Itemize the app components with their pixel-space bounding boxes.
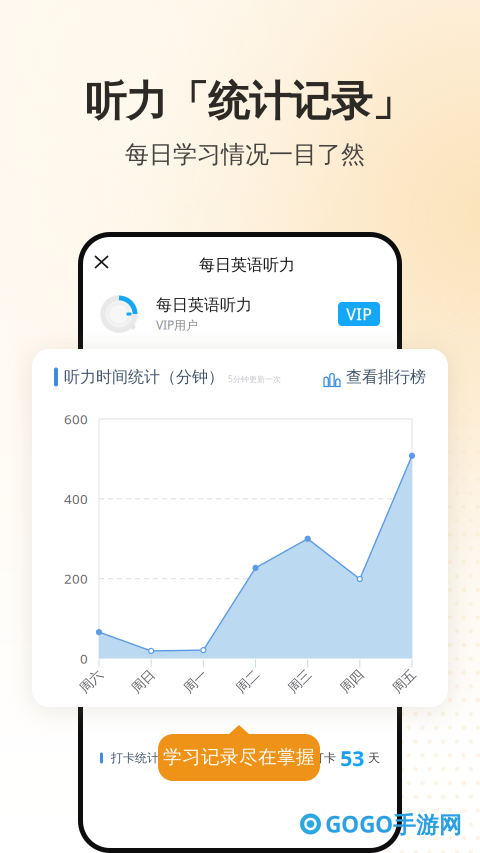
staticText: 周三 — [287, 673, 313, 690]
staticText: 查看排行榜 — [346, 367, 426, 387]
staticText: 天 — [364, 751, 380, 765]
staticText: 200 — [64, 570, 88, 587]
button[interactable]: 查看排行榜 — [324, 367, 426, 387]
staticText: 学习记录尽在掌握 — [163, 745, 315, 768]
staticText: 0 — [80, 650, 88, 667]
staticText: 53 — [340, 744, 364, 772]
staticText: 打卡 — [312, 751, 340, 765]
staticText: 周四 — [339, 673, 365, 690]
staticText: 听力时间统计（分钟） — [59, 367, 224, 387]
staticText: 听力「统计记录」 — [85, 76, 413, 127]
staticText: 5分钟更新一次 — [228, 374, 281, 384]
staticText: 每日英语听力 — [199, 255, 295, 275]
staticText: 周二 — [234, 673, 260, 690]
button[interactable]: 每日英语听力 — [78, 287, 402, 341]
staticText: 周五 — [391, 673, 417, 690]
staticText: GOGO手游网 — [325, 809, 462, 839]
staticText: VIP用户 — [156, 317, 198, 333]
staticText: 每日英语听力 — [156, 295, 252, 315]
staticText: 每日学习情况一目了然 — [125, 140, 365, 169]
staticText: 周一 — [182, 673, 208, 690]
staticText: 600 — [64, 410, 88, 428]
staticText: 周日 — [130, 673, 156, 690]
staticText: 打卡统计 — [103, 751, 159, 765]
staticText: VIP — [346, 303, 372, 325]
button[interactable]: 关闭 — [86, 247, 117, 277]
staticText: 周六 — [78, 673, 104, 690]
staticText: 400 — [64, 490, 88, 508]
